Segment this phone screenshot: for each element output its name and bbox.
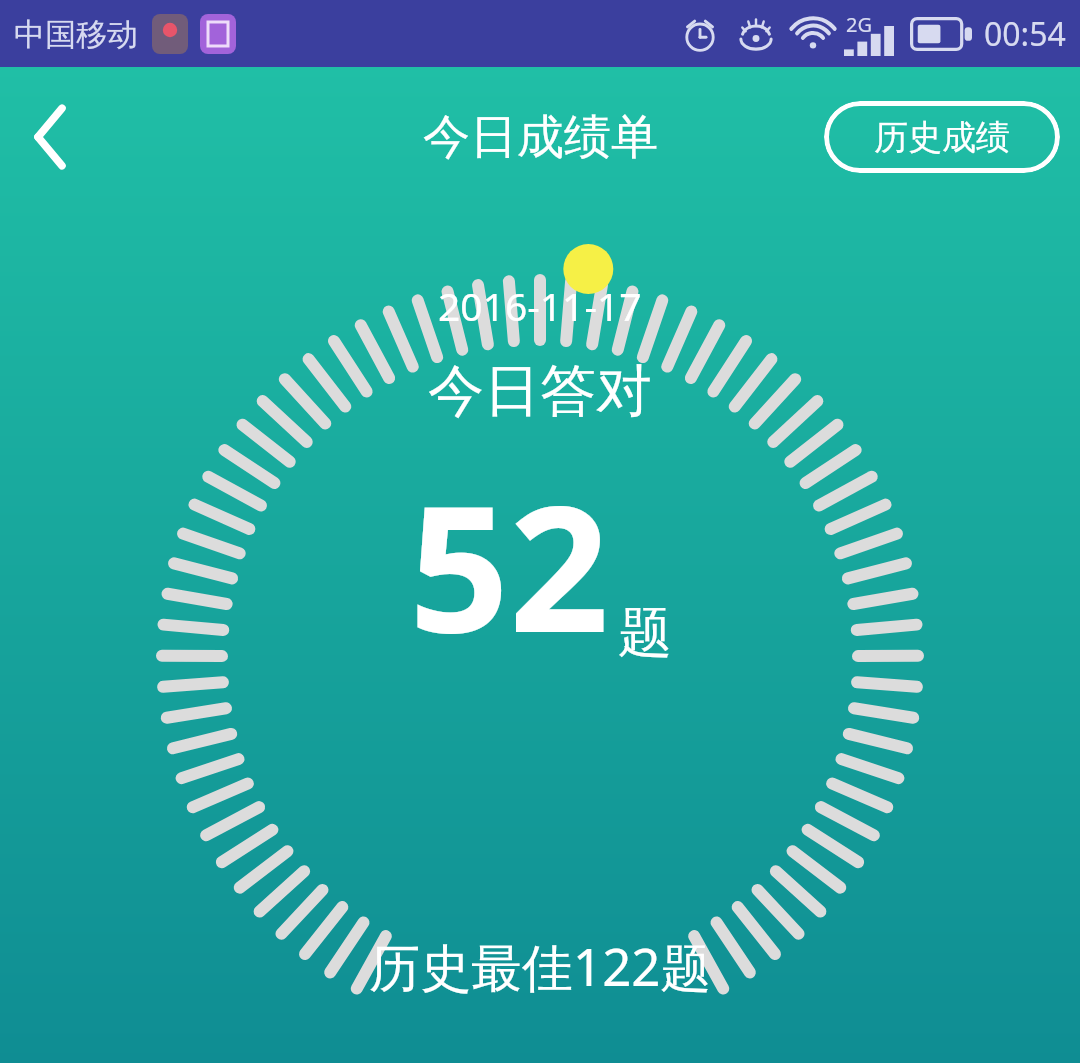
staticText: 题 [618,599,672,667]
staticText: 历史成绩 [874,116,1010,159]
staticText: 2G [846,11,872,38]
button[interactable]: Back [0,81,100,193]
staticText: 00:54 [984,12,1066,56]
button[interactable]: 历史成绩 [824,101,1060,173]
staticText: 今日答对 [428,356,652,427]
staticText: 2016-11-17 [438,279,642,332]
staticText: 52 [409,445,610,683]
staticText: 历史最佳122题 [369,931,712,1001]
staticText: 今日成绩单 [423,108,658,167]
staticText: 中国移动 [14,15,138,54]
